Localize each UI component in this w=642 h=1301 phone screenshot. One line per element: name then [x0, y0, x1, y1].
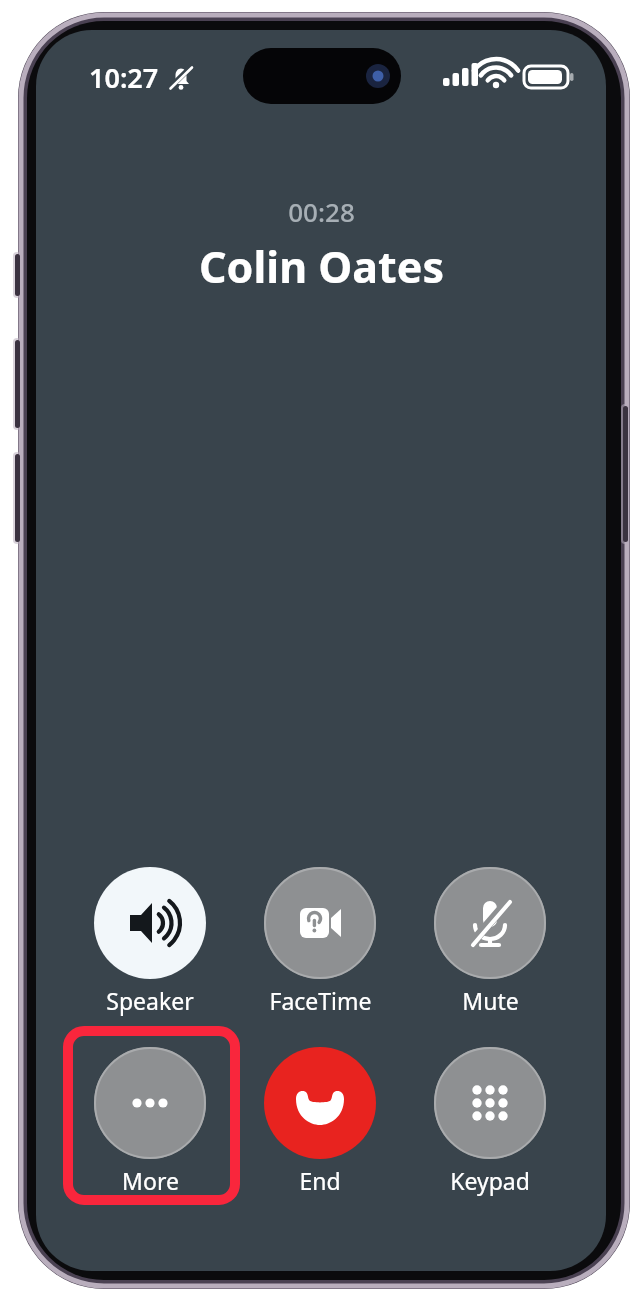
button[interactable]: More [88, 1047, 212, 1196]
staticText: 00:28 [288, 194, 355, 229]
staticText: End [299, 1165, 341, 1196]
button[interactable]: Speaker [88, 867, 212, 1016]
staticText: Colin Oates [199, 237, 444, 296]
staticText: 10:27 [89, 59, 159, 96]
button[interactable]: Keypad [428, 1047, 552, 1196]
button[interactable]: Mute [428, 867, 552, 1016]
staticText: Mute [462, 985, 519, 1016]
button[interactable]: End call [258, 1047, 382, 1196]
staticText: More [122, 1165, 179, 1196]
button[interactable]: FaceTime [258, 867, 382, 1016]
staticText: Speaker [106, 985, 194, 1016]
staticText: FaceTime [269, 985, 372, 1016]
staticText: Keypad [450, 1165, 530, 1196]
